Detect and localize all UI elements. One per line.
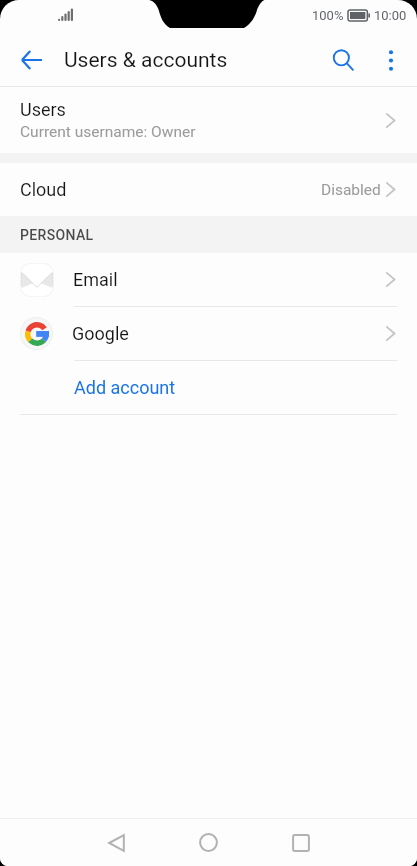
staticText: Current username: Owner [20,123,196,141]
button[interactable]: Back [70,819,162,866]
staticText: Disabled [321,181,381,199]
staticText: Cloud [20,179,321,200]
staticText: 10:00 [374,8,407,23]
button[interactable]: Email [0,253,417,306]
button[interactable]: Back [10,38,54,82]
staticText: Users [20,99,66,120]
staticText: Users & accounts [64,48,228,73]
button[interactable]: Home [162,819,255,866]
staticText: Google [72,323,385,344]
button[interactable]: Users [0,87,417,153]
button[interactable]: Search [319,36,367,84]
staticText: 100% [312,8,344,23]
staticText: Add account [74,377,176,398]
staticText: Email [73,269,385,290]
staticText: PERSONAL [20,227,94,243]
button[interactable]: Cloud [0,163,417,216]
button[interactable]: Add account [0,361,417,414]
button[interactable]: Recents [255,819,347,866]
button[interactable]: More options [367,36,415,84]
button[interactable]: Google [0,307,417,360]
